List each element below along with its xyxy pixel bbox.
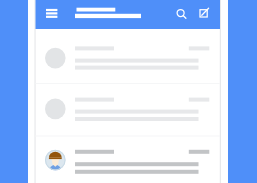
button[interactable]: Compose new message bbox=[193, 2, 215, 26]
button[interactable]: Conversation 2 bbox=[36, 83, 221, 136]
button[interactable]: Conversation 3 bbox=[36, 136, 221, 183]
button[interactable]: Search bbox=[170, 2, 192, 26]
button[interactable]: Navigation menu bbox=[43, 4, 63, 25]
button[interactable]: Conversation 1 bbox=[36, 29, 221, 83]
